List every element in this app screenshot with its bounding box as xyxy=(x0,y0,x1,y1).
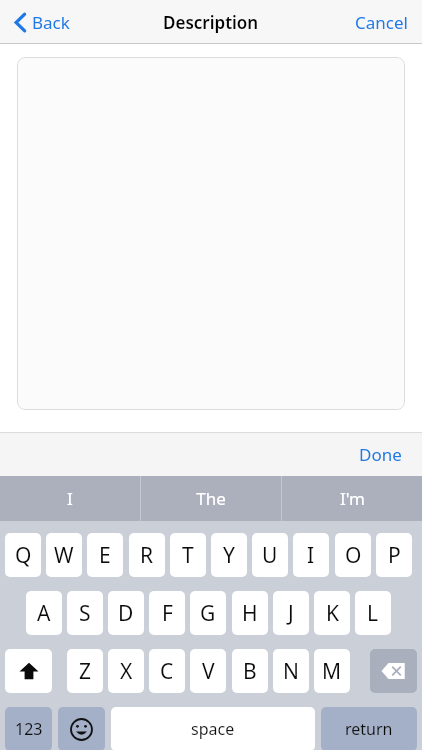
button[interactable]: H xyxy=(232,591,268,635)
button[interactable]: X xyxy=(108,649,144,693)
staticText: I xyxy=(307,541,315,570)
staticText: I xyxy=(67,487,73,510)
button[interactable]: space xyxy=(111,707,315,750)
staticText: E xyxy=(99,541,111,570)
staticText: M xyxy=(322,657,342,686)
button[interactable]: P xyxy=(376,533,412,577)
staticText: O xyxy=(345,541,362,570)
button[interactable]: Y xyxy=(211,533,247,577)
button[interactable]: I'm xyxy=(282,476,422,521)
button[interactable]: return xyxy=(321,707,417,750)
button[interactable]: T xyxy=(170,533,206,577)
button[interactable]: F xyxy=(149,591,185,635)
staticText: A xyxy=(37,599,51,628)
staticText: K xyxy=(326,599,339,628)
button[interactable]: W xyxy=(46,533,82,577)
staticText: N xyxy=(283,657,299,686)
button[interactable]: M xyxy=(314,649,350,693)
staticText: P xyxy=(388,541,401,570)
staticText: The xyxy=(196,487,226,510)
button[interactable]: A xyxy=(26,591,62,635)
button[interactable]: U xyxy=(252,533,288,577)
staticText: J xyxy=(288,599,294,628)
staticText: Y xyxy=(223,541,235,570)
staticText: L xyxy=(367,599,379,628)
button[interactable]: Z xyxy=(67,649,103,693)
staticText: R xyxy=(140,541,154,570)
staticText: return xyxy=(345,718,393,740)
staticText: Description xyxy=(163,11,259,34)
button[interactable]: L xyxy=(355,591,391,635)
button[interactable]: D xyxy=(108,591,144,635)
button[interactable]: B xyxy=(232,649,268,693)
staticText: Z xyxy=(79,657,92,686)
staticText: C xyxy=(160,657,174,686)
staticText: D xyxy=(118,599,134,628)
staticText: Cancel xyxy=(355,11,408,34)
button[interactable]: Emoji xyxy=(58,707,105,750)
staticText: T xyxy=(182,541,194,570)
staticText: 123 xyxy=(15,718,43,740)
button[interactable]: C xyxy=(149,649,185,693)
button[interactable]: Q xyxy=(5,533,41,577)
button[interactable]: Shift xyxy=(5,649,52,693)
button[interactable]: J xyxy=(273,591,309,635)
button[interactable]: The xyxy=(141,476,281,521)
button[interactable]: Cancel xyxy=(351,5,412,40)
button[interactable]: E xyxy=(87,533,123,577)
button[interactable]: Backspace xyxy=(370,649,417,693)
staticText: space xyxy=(191,718,235,740)
staticText: V xyxy=(202,657,215,686)
staticText: Back xyxy=(32,11,70,34)
staticText: I'm xyxy=(340,487,365,510)
staticText: W xyxy=(54,541,74,570)
button[interactable]: O xyxy=(335,533,371,577)
staticText: U xyxy=(262,541,278,570)
staticText: Q xyxy=(15,541,32,570)
button[interactable]: Done xyxy=(353,437,408,472)
button[interactable]: N xyxy=(273,649,309,693)
staticText: F xyxy=(162,599,173,628)
staticText: S xyxy=(79,599,91,628)
staticText: H xyxy=(242,599,258,628)
button[interactable]: S xyxy=(67,591,103,635)
button[interactable]: R xyxy=(129,533,165,577)
button[interactable]: G xyxy=(190,591,226,635)
staticText: B xyxy=(243,657,257,686)
button[interactable]: 123 xyxy=(5,707,52,750)
staticText: X xyxy=(120,657,133,686)
button[interactable]: V xyxy=(190,649,226,693)
button[interactable]: K xyxy=(314,591,350,635)
button[interactable]: Back xyxy=(10,5,74,40)
staticText: Done xyxy=(359,443,402,466)
staticText: G xyxy=(200,599,216,628)
button[interactable]: I xyxy=(293,533,329,577)
button[interactable] xyxy=(17,57,405,410)
button[interactable]: I xyxy=(0,476,140,521)
